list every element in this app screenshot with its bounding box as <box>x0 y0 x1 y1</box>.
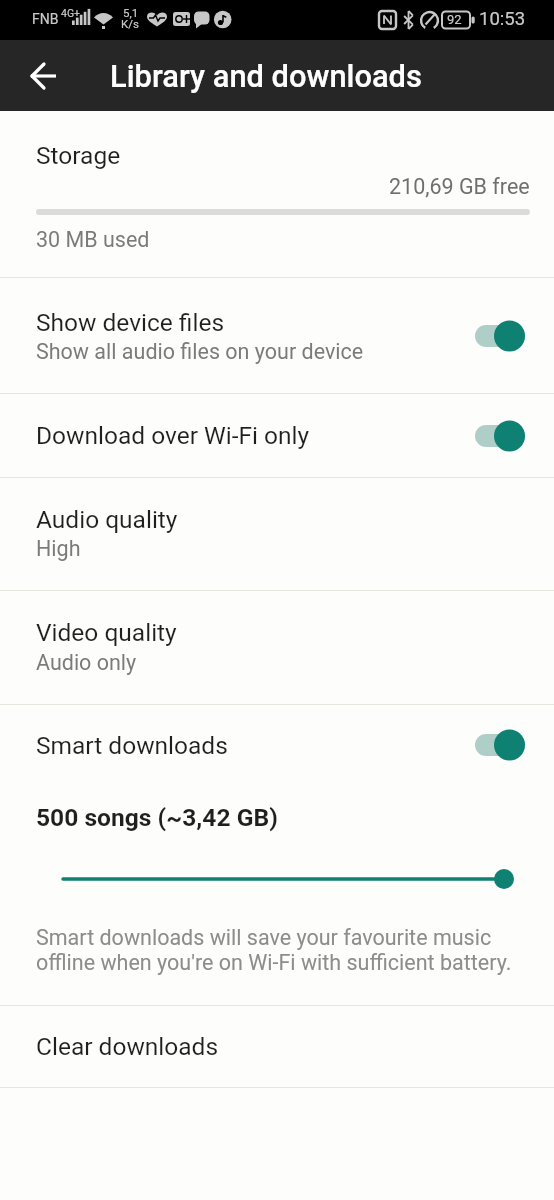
staticText: 500 songs (~3,42 GB) <box>36 803 278 832</box>
staticText: FNB <box>32 11 59 27</box>
button[interactable]: Download over Wi-Fi only <box>0 394 554 477</box>
button[interactable] <box>475 420 525 452</box>
staticText: 92 <box>447 12 462 27</box>
button[interactable] <box>475 729 525 761</box>
staticText: Clear downloads <box>36 1032 219 1061</box>
staticText: Show all audio files on your device <box>36 339 364 364</box>
button[interactable]: Show device files <box>0 278 554 393</box>
staticText: 10:53 <box>479 8 526 30</box>
staticText: 5,1 <box>123 6 139 19</box>
button[interactable] <box>475 320 525 352</box>
staticText: K/s <box>121 17 139 30</box>
button[interactable]: Storage <box>0 112 554 277</box>
staticText: Download over Wi-Fi only <box>36 421 310 450</box>
staticText: Smart downloads will save your favourite… <box>36 925 512 975</box>
button[interactable]: Video quality <box>0 591 554 704</box>
staticText: Smart downloads <box>36 731 228 760</box>
staticText: Storage <box>36 141 121 170</box>
staticText: Audio only <box>36 650 137 675</box>
staticText: Video quality <box>36 618 177 647</box>
button[interactable]: Smart downloads <box>0 705 554 785</box>
staticText: Library and downloads <box>110 58 422 94</box>
button[interactable]: Clear downloads <box>0 1006 554 1087</box>
button[interactable] <box>0 856 554 902</box>
staticText: 4G+ <box>61 7 81 19</box>
staticText: Show device files <box>36 308 225 337</box>
staticText: High <box>36 536 81 561</box>
staticText: 210,69 GB free <box>389 174 530 199</box>
button[interactable]: Audio quality <box>0 478 554 590</box>
button[interactable] <box>23 54 67 98</box>
staticText: Audio quality <box>36 505 178 534</box>
staticText: 30 MB used <box>36 227 150 252</box>
